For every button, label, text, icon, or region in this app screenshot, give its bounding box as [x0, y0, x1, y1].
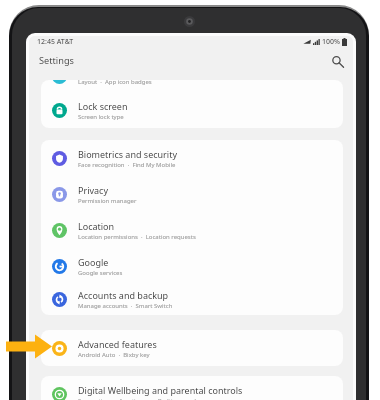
staticText: Permission manager: [78, 197, 137, 205]
staticText: Lock screen: [78, 100, 128, 112]
staticText: Face recognition · Find My Mobile: [78, 161, 176, 169]
staticText: Settings: [39, 54, 74, 67]
staticText: Location: [78, 220, 115, 232]
button[interactable]: Location: [41, 212, 343, 248]
staticText: 100%: [322, 37, 340, 47]
button[interactable]: Privacy: [41, 176, 343, 212]
staticText: Accounts and backup: [78, 289, 169, 301]
button[interactable]: Search: [327, 51, 347, 71]
staticText: Google: [78, 256, 109, 268]
staticText: Screen time · App timers · Bedtime mode: [78, 397, 200, 400]
button[interactable]: Digital Wellbeing and parental controls: [41, 376, 343, 400]
staticText: Location permissions · Location requests: [78, 233, 196, 241]
staticText: Manage accounts · Smart Switch: [78, 302, 173, 310]
staticText: Android Auto · Bixby key: [78, 351, 150, 359]
button[interactable]: Google: [41, 248, 343, 284]
staticText: Google services: [78, 269, 123, 277]
button[interactable]: Accounts and backup: [41, 284, 343, 315]
staticText: Layout · App icon badges: [78, 80, 152, 86]
staticText: Digital Wellbeing and parental controls: [78, 384, 243, 396]
staticText: Screen lock type: [78, 113, 124, 121]
staticText: 12:45 AT&T: [37, 37, 74, 47]
staticText: Privacy: [78, 184, 109, 196]
staticText: Advanced features: [78, 338, 157, 350]
button[interactable]: Biometrics and security: [41, 140, 343, 176]
button[interactable]: Advanced features: [41, 330, 343, 366]
staticText: Biometrics and security: [78, 148, 178, 160]
